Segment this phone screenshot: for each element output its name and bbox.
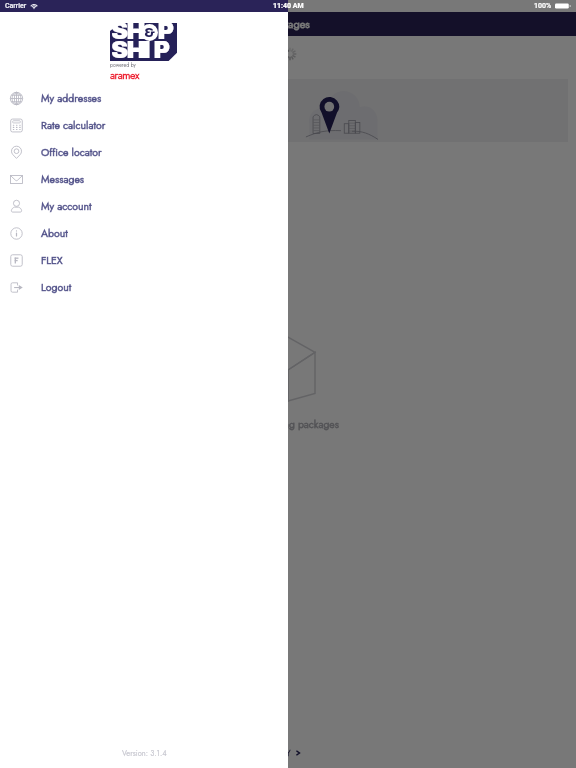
button[interactable]: About xyxy=(0,220,288,247)
staticText: My addresses xyxy=(41,91,102,106)
staticText: About xyxy=(41,226,68,241)
staticText: S xyxy=(111,18,129,44)
staticText: Messages xyxy=(41,172,85,187)
staticText: S xyxy=(111,37,129,63)
staticText: Logout xyxy=(41,280,72,295)
staticText: Logout xyxy=(41,280,72,295)
button[interactable]: Logout xyxy=(0,274,288,301)
staticText: P xyxy=(153,37,171,63)
staticText: About xyxy=(41,226,68,241)
button[interactable]: Rate calculator xyxy=(0,112,288,139)
staticText: Messages xyxy=(41,172,85,187)
staticText: No incoming packages xyxy=(237,417,339,432)
staticText: P xyxy=(157,18,175,44)
staticText: SHIPMENT HISTORY xyxy=(212,747,291,759)
staticText: Office locator xyxy=(41,145,102,160)
staticText: aramex xyxy=(110,68,139,83)
button[interactable]: My account xyxy=(0,193,288,220)
staticText: I xyxy=(142,37,152,63)
staticText: 11:40 AM xyxy=(273,2,304,10)
staticText: FLEX xyxy=(41,253,63,268)
staticText: Office locator xyxy=(41,145,102,160)
staticText: Rate calculator xyxy=(41,118,106,133)
button[interactable]: FLEX xyxy=(0,247,288,274)
staticText: Version: 3.1.4 xyxy=(122,748,167,759)
staticText: Packages xyxy=(267,16,310,32)
button[interactable]: Office locator xyxy=(0,139,288,166)
staticText: H xyxy=(126,18,146,44)
staticText: powered by xyxy=(110,61,136,69)
staticText: My account xyxy=(41,199,92,214)
staticText: Rate calculator xyxy=(41,118,106,133)
staticText: My account xyxy=(41,199,92,214)
staticText: & xyxy=(144,26,155,39)
button[interactable]: SHIPMENT HISTORY xyxy=(212,747,302,759)
staticText: H xyxy=(126,37,146,63)
button[interactable]: Messages xyxy=(0,166,288,193)
button[interactable]: My addresses xyxy=(0,85,288,112)
staticText: My addresses xyxy=(41,91,102,106)
staticText: 100% xyxy=(534,2,552,10)
staticText: Carrier xyxy=(5,2,27,10)
staticText: FLEX xyxy=(41,253,63,268)
